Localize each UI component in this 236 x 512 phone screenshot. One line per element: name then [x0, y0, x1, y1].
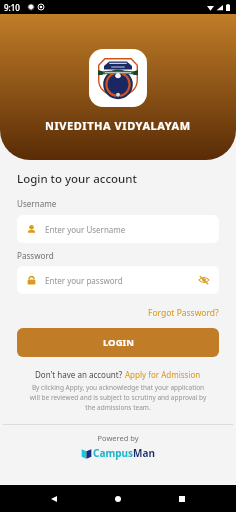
- staticText: NIVEDITHA VIDYALAYAM: [45, 118, 191, 133]
- button[interactable]: Enter your Username: [17, 215, 219, 243]
- button[interactable]: Back: [44, 489, 64, 509]
- staticText: Password: [17, 250, 54, 261]
- staticText: Apply for Admission: [125, 369, 201, 380]
- button[interactable]: Forgot Password?: [148, 307, 219, 319]
- staticText: Login to your account: [17, 171, 137, 187]
- staticText: Enter your password: [45, 275, 123, 286]
- staticText: Powered by: [0, 433, 236, 443]
- button[interactable]: Home: [108, 489, 128, 509]
- button[interactable]: LOGIN: [17, 328, 219, 357]
- button[interactable]: Enter your password: [17, 266, 219, 294]
- button[interactable]: Show password: [198, 274, 210, 286]
- staticText: LOGIN: [103, 336, 134, 349]
- button[interactable]: Recents: [172, 489, 192, 509]
- staticText: Don't have an account?: [35, 369, 125, 380]
- staticText: Forgot Password?: [148, 307, 219, 319]
- staticText: Username: [17, 198, 57, 209]
- staticText: By clicking Apply, you acknowledge that …: [20, 383, 216, 412]
- staticText: CampusMan: [93, 446, 155, 460]
- staticText: Enter your Username: [45, 224, 126, 235]
- staticText: 9:10: [4, 2, 20, 13]
- button[interactable]: Apply for Admission: [125, 369, 201, 380]
